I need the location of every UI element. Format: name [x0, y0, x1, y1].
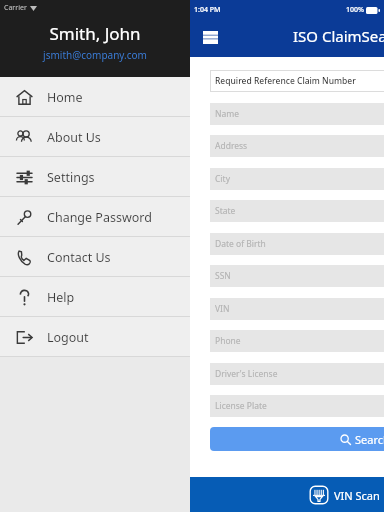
staticText: SSN — [215, 270, 231, 282]
button[interactable]: VIN — [210, 298, 384, 320]
button[interactable]: State — [210, 200, 384, 222]
button[interactable]: Search — [210, 427, 384, 451]
staticText: Date of Birth — [215, 238, 266, 250]
staticText: License Plate — [215, 400, 267, 412]
staticText: City — [215, 173, 230, 185]
button[interactable]: Open navigation menu — [200, 27, 220, 47]
button[interactable]: Settings — [0, 157, 190, 197]
button[interactable]: Driver's License — [210, 363, 384, 385]
button[interactable]: VIN Scan — [305, 485, 384, 505]
staticText: State — [215, 205, 236, 217]
staticText: Name — [215, 108, 239, 120]
button[interactable]: Change Password — [0, 197, 190, 237]
button[interactable]: Address — [210, 135, 384, 157]
staticText: Search — [355, 432, 384, 447]
staticText: Smith, John — [49, 22, 141, 45]
staticText: 1:04 PM — [194, 5, 221, 15]
staticText: VIN Scan — [334, 488, 380, 503]
button[interactable]: Required Reference Claim Number — [210, 70, 384, 92]
button[interactable]: Home — [0, 77, 190, 117]
button[interactable]: Logout — [0, 317, 190, 357]
button[interactable]: Help — [0, 277, 190, 317]
staticText: 100% — [346, 5, 364, 15]
staticText: About Us — [47, 129, 101, 146]
staticText: jsmith@company.com — [43, 48, 147, 62]
button[interactable]: About Us — [0, 117, 190, 157]
button[interactable]: Contact Us — [0, 237, 190, 277]
button[interactable]: SSN — [210, 265, 384, 287]
staticText: Change Password — [47, 209, 152, 226]
staticText: Help — [47, 289, 75, 306]
staticText: Settings — [47, 169, 95, 186]
staticText: Required Reference Claim Number — [215, 75, 356, 87]
button[interactable]: Phone — [210, 330, 384, 352]
staticText: Driver's License — [215, 368, 278, 380]
staticText: ISO ClaimSearch — [293, 26, 384, 46]
staticText: Logout — [47, 329, 89, 346]
staticText: Phone — [215, 335, 241, 347]
button[interactable]: City — [210, 168, 384, 190]
staticText: Carrier — [4, 3, 27, 13]
staticText: Address — [215, 140, 248, 152]
staticText: Home — [47, 89, 83, 106]
button[interactable]: License Plate — [210, 395, 384, 417]
button[interactable]: Name — [210, 103, 384, 125]
staticText: Contact Us — [47, 249, 111, 266]
staticText: VIN — [215, 303, 230, 315]
button[interactable]: Date of Birth — [210, 233, 384, 255]
